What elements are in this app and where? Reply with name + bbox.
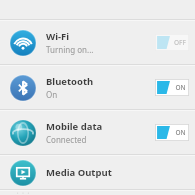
- button[interactable]: Mobile data: [0, 111, 195, 154]
- staticText: Connected: [46, 134, 87, 145]
- button[interactable]: Bluetooth: [0, 66, 195, 109]
- staticText: Mobile data: [46, 120, 103, 133]
- staticText: Bluetooth: [46, 75, 94, 88]
- button[interactable]: Bluetooth toggle: [155, 79, 189, 96]
- button[interactable]: Media Output: [0, 156, 195, 189]
- staticText: ON: [175, 128, 186, 137]
- staticText: Wi-Fi: [46, 30, 70, 43]
- staticText: On: [46, 89, 58, 100]
- button[interactable]: Mobile data toggle: [155, 124, 189, 141]
- button[interactable]: Wi-Fi: [0, 21, 195, 64]
- staticText: Turning on...: [46, 44, 94, 55]
- staticText: Media Output: [46, 166, 112, 179]
- button[interactable]: Wi-Fi toggle: [155, 34, 189, 51]
- staticText: OFF: [174, 38, 186, 47]
- staticText: ON: [175, 83, 186, 92]
